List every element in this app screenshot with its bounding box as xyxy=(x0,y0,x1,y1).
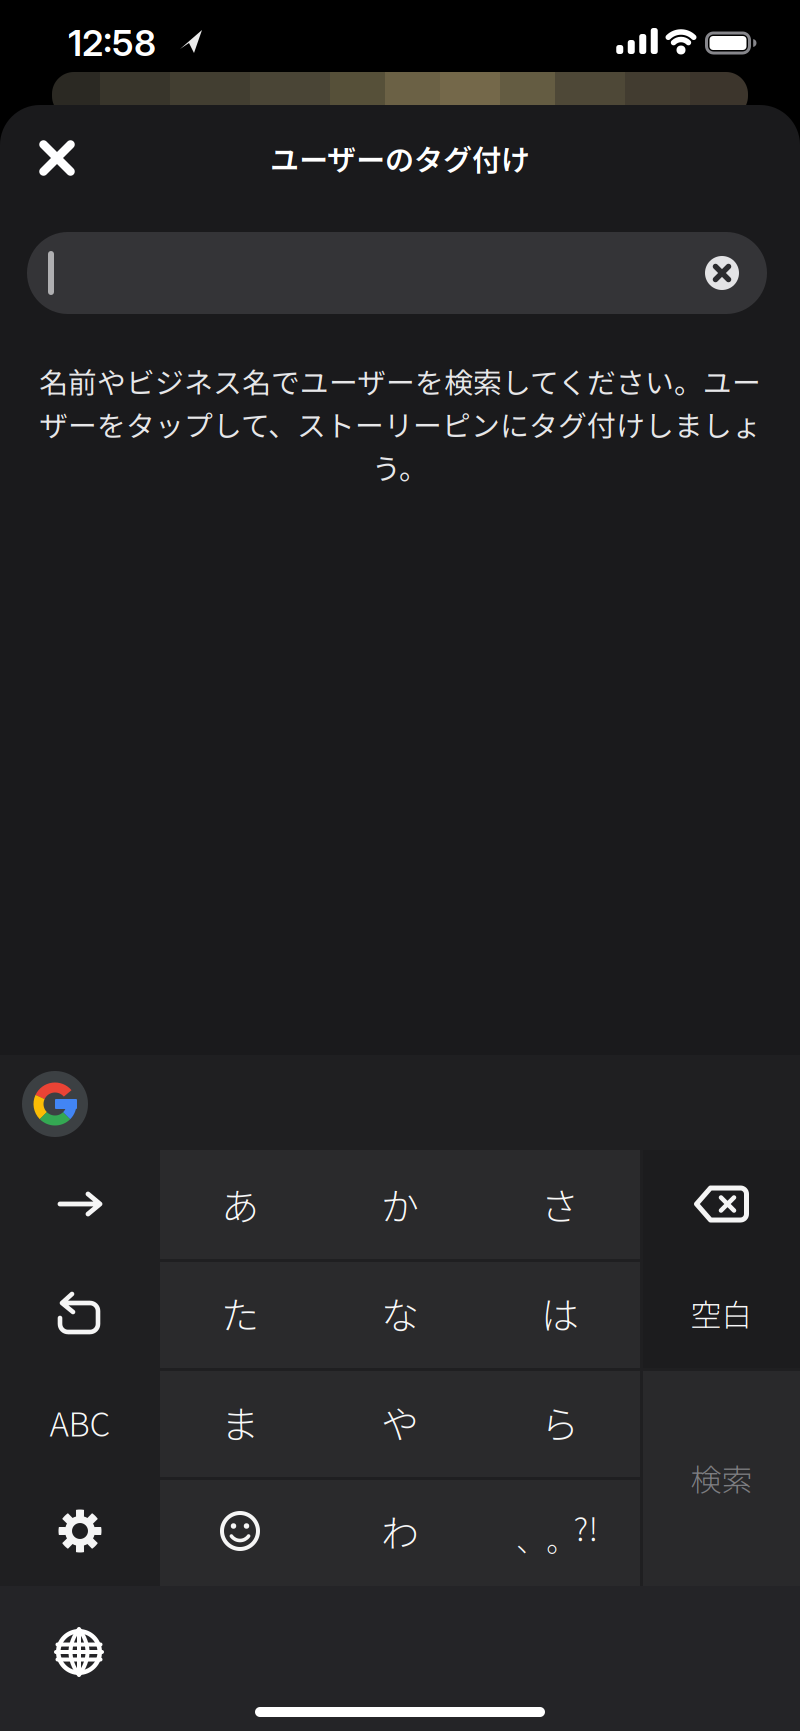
button[interactable]: ABC xyxy=(0,1369,160,1475)
staticText: 空白 xyxy=(690,1290,752,1335)
staticText: ザーをタップして、ストーリーピンにタグ付けしましょ xyxy=(39,403,761,445)
button[interactable]: か xyxy=(320,1151,480,1257)
button[interactable]: さ xyxy=(480,1151,640,1257)
staticText: 、。 xyxy=(516,1517,576,1561)
button[interactable]: Clear search xyxy=(700,251,744,295)
staticText: か xyxy=(381,1176,419,1231)
button[interactable]: わ xyxy=(320,1478,480,1584)
button[interactable]: な xyxy=(320,1260,480,1366)
button[interactable]: Search xyxy=(27,232,767,314)
staticText: 名前やビジネス名でユーザーを検索してください。ユー xyxy=(39,360,761,402)
button[interactable]: Undo xyxy=(0,1260,160,1366)
button[interactable]: Delete xyxy=(643,1151,800,1257)
staticText: ABC xyxy=(49,1398,110,1446)
staticText: あ xyxy=(221,1176,259,1231)
staticText: さ xyxy=(541,1176,579,1231)
button[interactable]: Emoji xyxy=(160,1478,320,1584)
staticText: や xyxy=(381,1394,419,1449)
button[interactable]: 検索 xyxy=(643,1370,800,1585)
staticText: た xyxy=(221,1285,259,1340)
button[interactable]: Close xyxy=(27,128,87,188)
button[interactable]: は xyxy=(480,1260,640,1366)
staticText: う。 xyxy=(372,446,428,488)
button[interactable]: 、。 xyxy=(480,1478,640,1584)
staticText: な xyxy=(381,1285,419,1340)
staticText: は xyxy=(541,1285,579,1340)
staticText: わ xyxy=(381,1503,419,1558)
staticText: ら xyxy=(541,1394,579,1449)
staticText: 12:58 xyxy=(68,21,156,65)
button[interactable]: Settings xyxy=(0,1478,160,1584)
button[interactable]: 空白 xyxy=(643,1260,800,1366)
button[interactable]: Switch keyboard xyxy=(34,1607,124,1697)
button[interactable]: ま xyxy=(160,1369,320,1475)
staticText: ユーザーのタグ付け xyxy=(270,137,530,179)
staticText: ま xyxy=(221,1394,259,1449)
button[interactable]: ら xyxy=(480,1369,640,1475)
button[interactable]: や xyxy=(320,1369,480,1475)
staticText: ?! xyxy=(573,1503,598,1551)
staticText: 検索 xyxy=(690,1455,752,1500)
button[interactable]: Google xyxy=(15,1064,95,1144)
button[interactable]: た xyxy=(160,1260,320,1366)
button[interactable]: あ xyxy=(160,1151,320,1257)
button[interactable]: Cursor right xyxy=(0,1151,160,1257)
